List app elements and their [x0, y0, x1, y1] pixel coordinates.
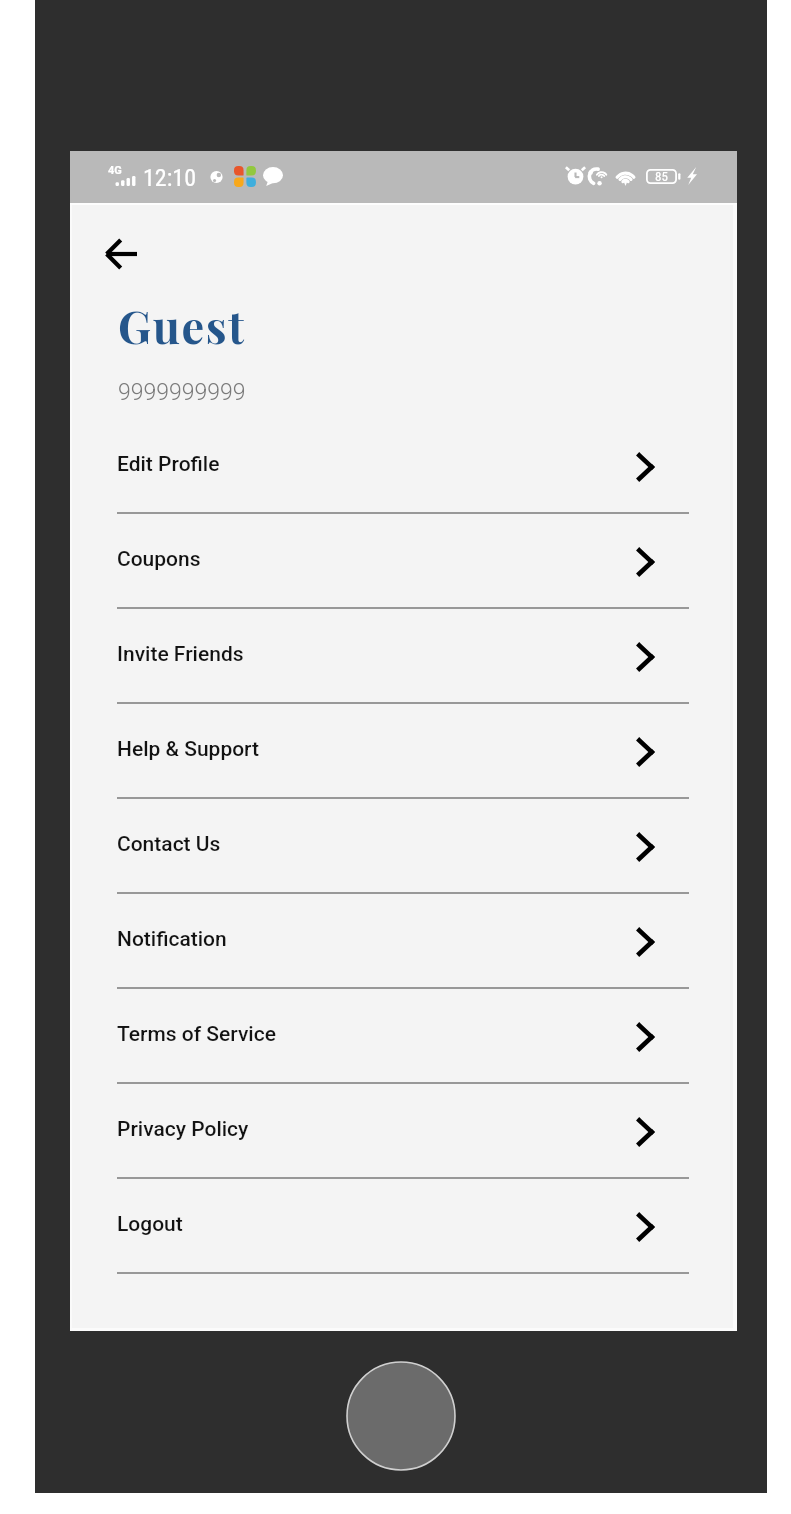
button[interactable]: Privacy Policy	[70, 1091, 737, 1167]
button[interactable]: Notification	[70, 901, 737, 977]
button[interactable]: Back	[82, 228, 160, 280]
staticText: 4G	[108, 164, 122, 177]
button[interactable]: Invite Friends	[70, 616, 737, 692]
staticText: Notification	[117, 927, 227, 952]
staticText: Edit Profile	[117, 452, 220, 477]
staticText: Coupons	[117, 547, 201, 572]
staticText: Logout	[117, 1212, 183, 1237]
staticText: 9999999999	[118, 379, 246, 406]
button[interactable]: Edit Profile	[70, 426, 737, 502]
staticText: 12:10	[143, 164, 196, 192]
button[interactable]: Terms of Service	[70, 996, 737, 1072]
staticText: Privacy Policy	[117, 1117, 249, 1142]
staticText: Terms of Service	[117, 1022, 276, 1047]
staticText: 85	[655, 169, 668, 184]
button[interactable]: Coupons	[70, 521, 737, 597]
staticText: Invite Friends	[117, 642, 244, 667]
staticText: Guest	[118, 295, 246, 355]
staticText: Contact Us	[117, 832, 221, 857]
button[interactable]: Contact Us	[70, 806, 737, 882]
staticText: Help & Support	[117, 737, 260, 762]
button[interactable]: Logout	[70, 1186, 737, 1262]
button[interactable]: Help & Support	[70, 711, 737, 787]
